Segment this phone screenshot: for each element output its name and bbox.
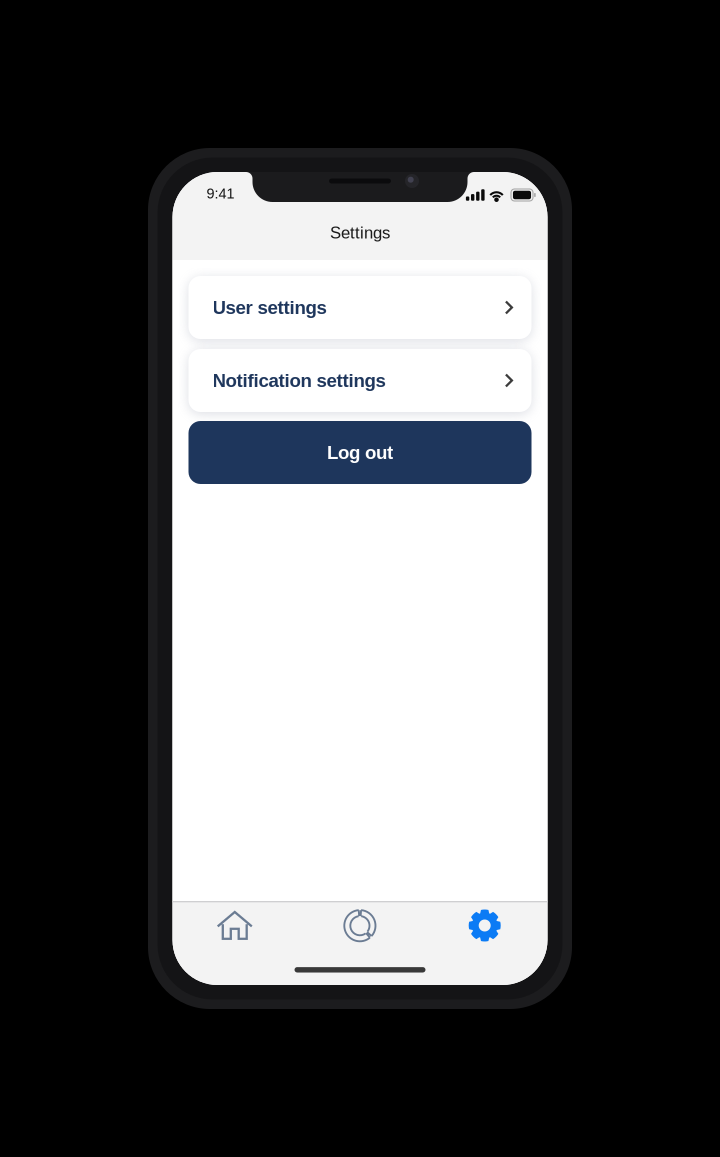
button[interactable]: User settings bbox=[188, 276, 531, 339]
staticText: Notification settings bbox=[212, 370, 385, 391]
staticText: 9:41 bbox=[206, 185, 234, 202]
button[interactable]: Statistics bbox=[297, 902, 422, 949]
staticText: Settings bbox=[330, 223, 390, 242]
button[interactable]: Home bbox=[172, 902, 297, 949]
staticText: Log out bbox=[327, 442, 393, 463]
button[interactable]: Log out bbox=[188, 421, 531, 484]
button[interactable]: Notification settings bbox=[188, 349, 531, 412]
button[interactable]: Settings bbox=[422, 902, 547, 949]
staticText: User settings bbox=[212, 297, 326, 318]
